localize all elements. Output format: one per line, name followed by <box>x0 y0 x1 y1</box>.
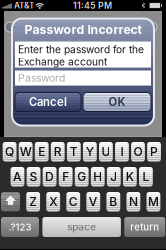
button[interactable]: H <box>91 167 105 186</box>
staticText: X <box>49 194 57 209</box>
button[interactable]: W <box>19 142 33 161</box>
staticText: 11:45 PM <box>73 0 112 11</box>
staticText: I <box>120 144 123 159</box>
staticText: T <box>70 144 78 159</box>
staticText: W <box>20 144 32 159</box>
staticText: J <box>110 169 117 184</box>
staticText: A <box>13 169 22 184</box>
staticText: V <box>89 194 98 209</box>
staticText: Password Incorrect <box>24 22 141 37</box>
button[interactable]: E <box>35 142 49 161</box>
button[interactable]: Cancel <box>15 92 81 111</box>
button[interactable]: C <box>66 192 80 211</box>
staticText: N <box>129 194 138 209</box>
button[interactable]: B <box>106 192 120 211</box>
staticText: Exchange account <box>18 56 107 68</box>
staticText: O <box>133 144 142 159</box>
staticText: C <box>69 194 78 209</box>
staticText: Z <box>29 194 37 209</box>
staticText: Password <box>18 72 65 84</box>
staticText: G <box>77 169 86 184</box>
button[interactable]: I <box>115 142 129 161</box>
button[interactable]: Q <box>3 142 16 161</box>
staticText: L <box>142 169 149 184</box>
button[interactable]: N <box>126 192 140 211</box>
button[interactable]: S <box>27 167 40 186</box>
staticText: space <box>67 221 96 233</box>
staticText: return <box>130 221 159 233</box>
staticText: F <box>62 169 69 184</box>
button[interactable]: OK <box>83 92 151 111</box>
staticText: Enter the password for the <box>18 43 144 56</box>
button[interactable]: J <box>107 167 121 186</box>
button[interactable]: V <box>86 192 100 211</box>
button[interactable]: D <box>43 167 56 186</box>
button[interactable]: T <box>67 142 81 161</box>
button[interactable]: .?123 <box>1 217 39 237</box>
button[interactable]: O <box>131 142 145 161</box>
staticText: R <box>54 144 62 159</box>
button[interactable]: Shift <box>1 192 20 211</box>
button[interactable]: Y <box>83 142 97 161</box>
button[interactable]: A <box>11 167 24 186</box>
button[interactable]: L <box>139 167 153 186</box>
button[interactable]: K <box>123 167 137 186</box>
staticText: K <box>126 169 134 184</box>
staticText: Cancel <box>29 95 67 109</box>
staticText: Q <box>5 144 14 159</box>
button[interactable]: M <box>146 192 160 211</box>
staticText: AT&T <box>14 0 34 10</box>
staticText: D <box>45 169 54 184</box>
button[interactable]: P <box>147 142 161 161</box>
button[interactable]: Z <box>26 192 40 211</box>
staticText: E <box>38 144 45 159</box>
button[interactable]: G <box>75 167 89 186</box>
staticText: B <box>109 194 117 209</box>
staticText: Y <box>86 144 94 159</box>
staticText: M <box>148 194 159 209</box>
button[interactable]: space <box>42 217 121 237</box>
button[interactable]: R <box>51 142 65 161</box>
staticText: OK <box>108 95 125 109</box>
staticText: S <box>29 169 37 184</box>
button[interactable]: X <box>46 192 60 211</box>
button[interactable]: return <box>124 217 165 237</box>
staticText: U <box>101 144 110 159</box>
staticText: H <box>93 169 102 184</box>
staticText: .?123 <box>8 221 31 233</box>
button[interactable]: F <box>59 167 73 186</box>
staticText: P <box>150 144 158 159</box>
button[interactable]: U <box>99 142 113 161</box>
